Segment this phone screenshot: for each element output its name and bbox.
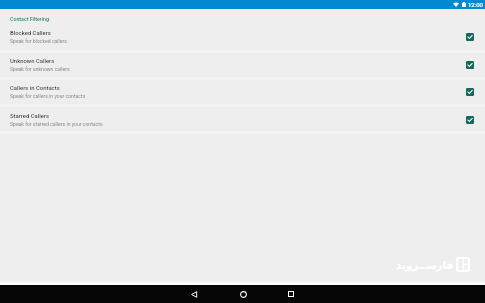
staticText: Speak for callers in your contacts: [10, 93, 86, 99]
button[interactable]: Blocked Callers: [0, 23, 485, 52]
button[interactable]: Unknown Callers: [0, 52, 485, 79]
staticText: Speak for starred callers in your contac…: [10, 121, 103, 127]
staticText: Speak for unknown callers: [10, 66, 70, 72]
button[interactable]: Callers in Contacts: [0, 79, 485, 106]
button[interactable]: Back: [185, 285, 203, 303]
staticText: Unknown Callers: [10, 58, 55, 65]
staticText: Starred Callers: [10, 113, 50, 120]
button[interactable]: Home: [234, 285, 252, 303]
button[interactable]: Recent apps: [282, 285, 300, 303]
staticText: Speak for blocked callers: [10, 38, 67, 44]
staticText: 12:00: [468, 1, 483, 8]
staticText: Contact Filtering: [10, 16, 49, 22]
staticText: Callers in Contacts: [10, 85, 60, 92]
staticText: Blocked Callers: [10, 30, 51, 37]
button[interactable]: Starred Callers: [0, 106, 485, 134]
staticText: فارســروید: [396, 259, 454, 271]
